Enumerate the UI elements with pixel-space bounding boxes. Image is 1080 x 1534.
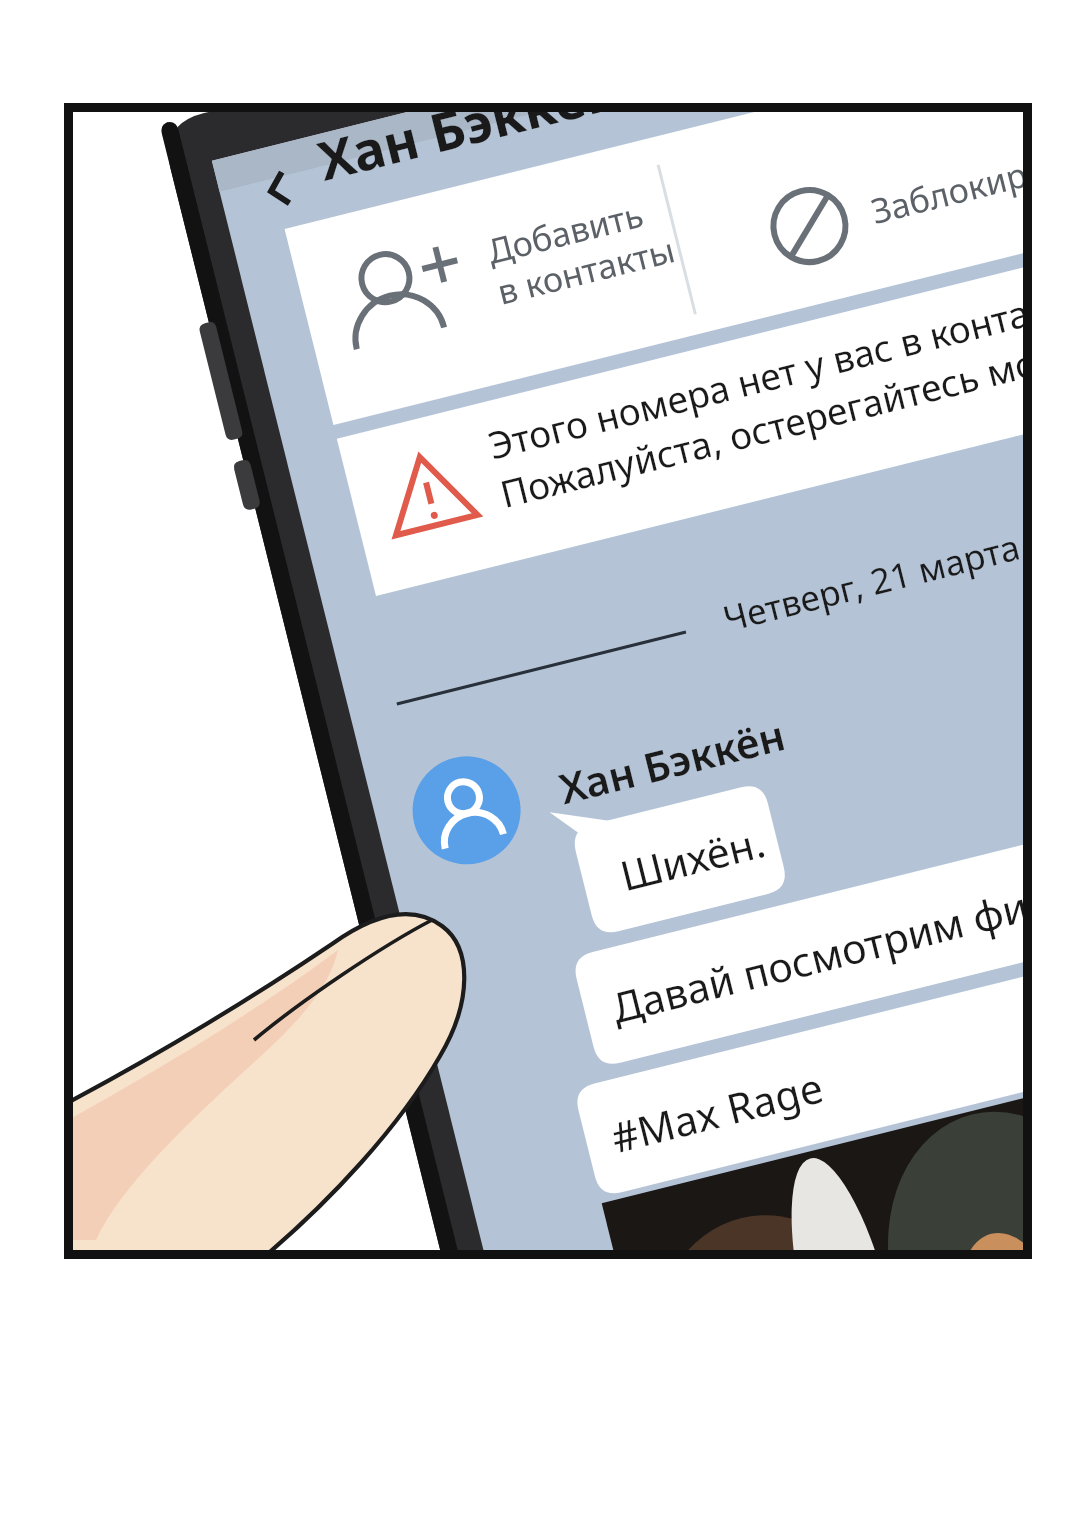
button[interactable]: Comic panel showing a phone chat screen (0, 0, 1080, 1534)
